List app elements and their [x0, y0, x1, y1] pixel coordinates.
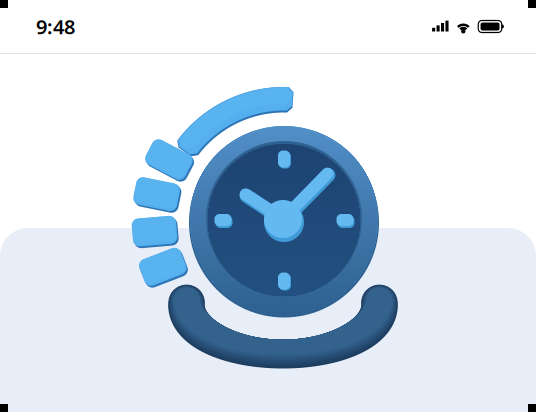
- staticText: 9:48: [36, 13, 75, 40]
